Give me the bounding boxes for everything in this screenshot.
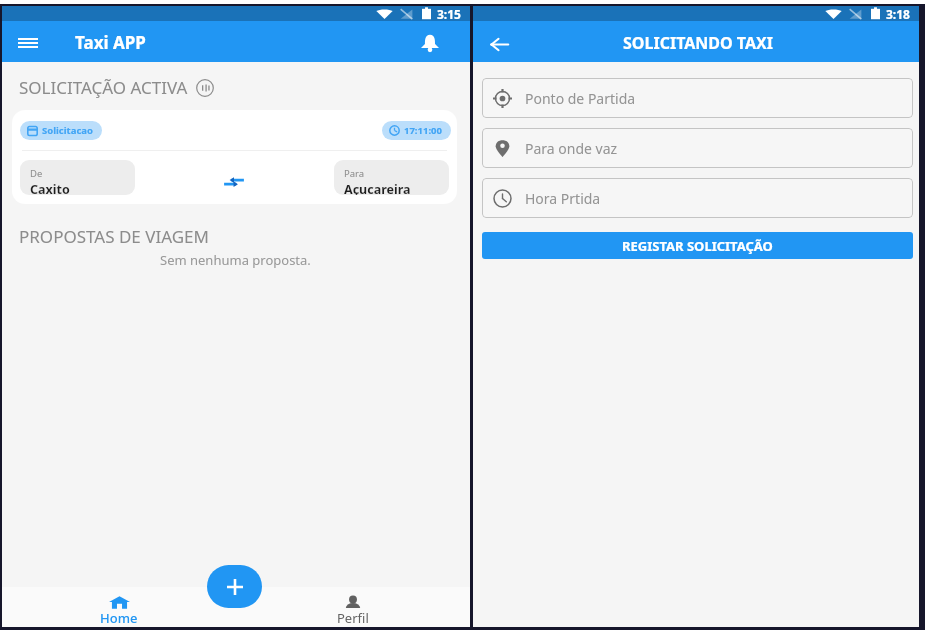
button[interactable]: Back bbox=[483, 28, 515, 60]
staticText: Para onde vaz bbox=[525, 139, 618, 158]
staticText: Ponto de Partida bbox=[525, 89, 636, 108]
staticText: Perfil bbox=[337, 609, 369, 627]
button[interactable]: Notifications bbox=[414, 27, 446, 59]
staticText: Hora Prtida bbox=[525, 189, 601, 208]
staticText: Caxito bbox=[30, 181, 70, 195]
staticText: SOLICITANDO TAXI bbox=[623, 32, 773, 54]
button[interactable]: Home bbox=[2, 587, 236, 627]
button[interactable]: Para onde vaz bbox=[482, 128, 913, 168]
staticText: De bbox=[30, 167, 43, 180]
staticText: Para bbox=[344, 167, 365, 180]
button[interactable]: Solicitacao bbox=[12, 110, 457, 204]
staticText: 17:11:00 bbox=[404, 124, 442, 137]
staticText: Home bbox=[100, 609, 138, 627]
button[interactable]: De bbox=[20, 160, 135, 195]
button[interactable]: Solicitacao bbox=[27, 124, 93, 137]
button[interactable]: Para bbox=[334, 160, 449, 195]
staticText: 3:15 bbox=[437, 6, 461, 21]
staticText: SOLICITAÇÃO ACTIVA bbox=[19, 76, 188, 99]
staticText: Taxi APP bbox=[75, 31, 146, 54]
button[interactable]: Add bbox=[207, 565, 262, 608]
staticText: REGISTAR SOLICITAÇÃO bbox=[622, 237, 773, 255]
button[interactable]: Perfil bbox=[236, 587, 470, 627]
staticText: 3:18 bbox=[886, 6, 910, 21]
staticText: PROPOSTAS DE VIAGEM bbox=[19, 225, 209, 248]
button[interactable]: Menu bbox=[12, 27, 44, 59]
button[interactable]: Hora Prtida bbox=[482, 178, 913, 218]
button[interactable]: Ponto de Partida bbox=[482, 78, 913, 118]
staticText: Solicitacao bbox=[42, 124, 93, 137]
button[interactable]: REGISTAR SOLICITAÇÃO bbox=[482, 232, 913, 259]
button[interactable]: 17:11:00 bbox=[389, 124, 442, 137]
staticText: Açucareira bbox=[344, 181, 411, 195]
staticText: Sem nenhuma proposta. bbox=[160, 251, 311, 269]
